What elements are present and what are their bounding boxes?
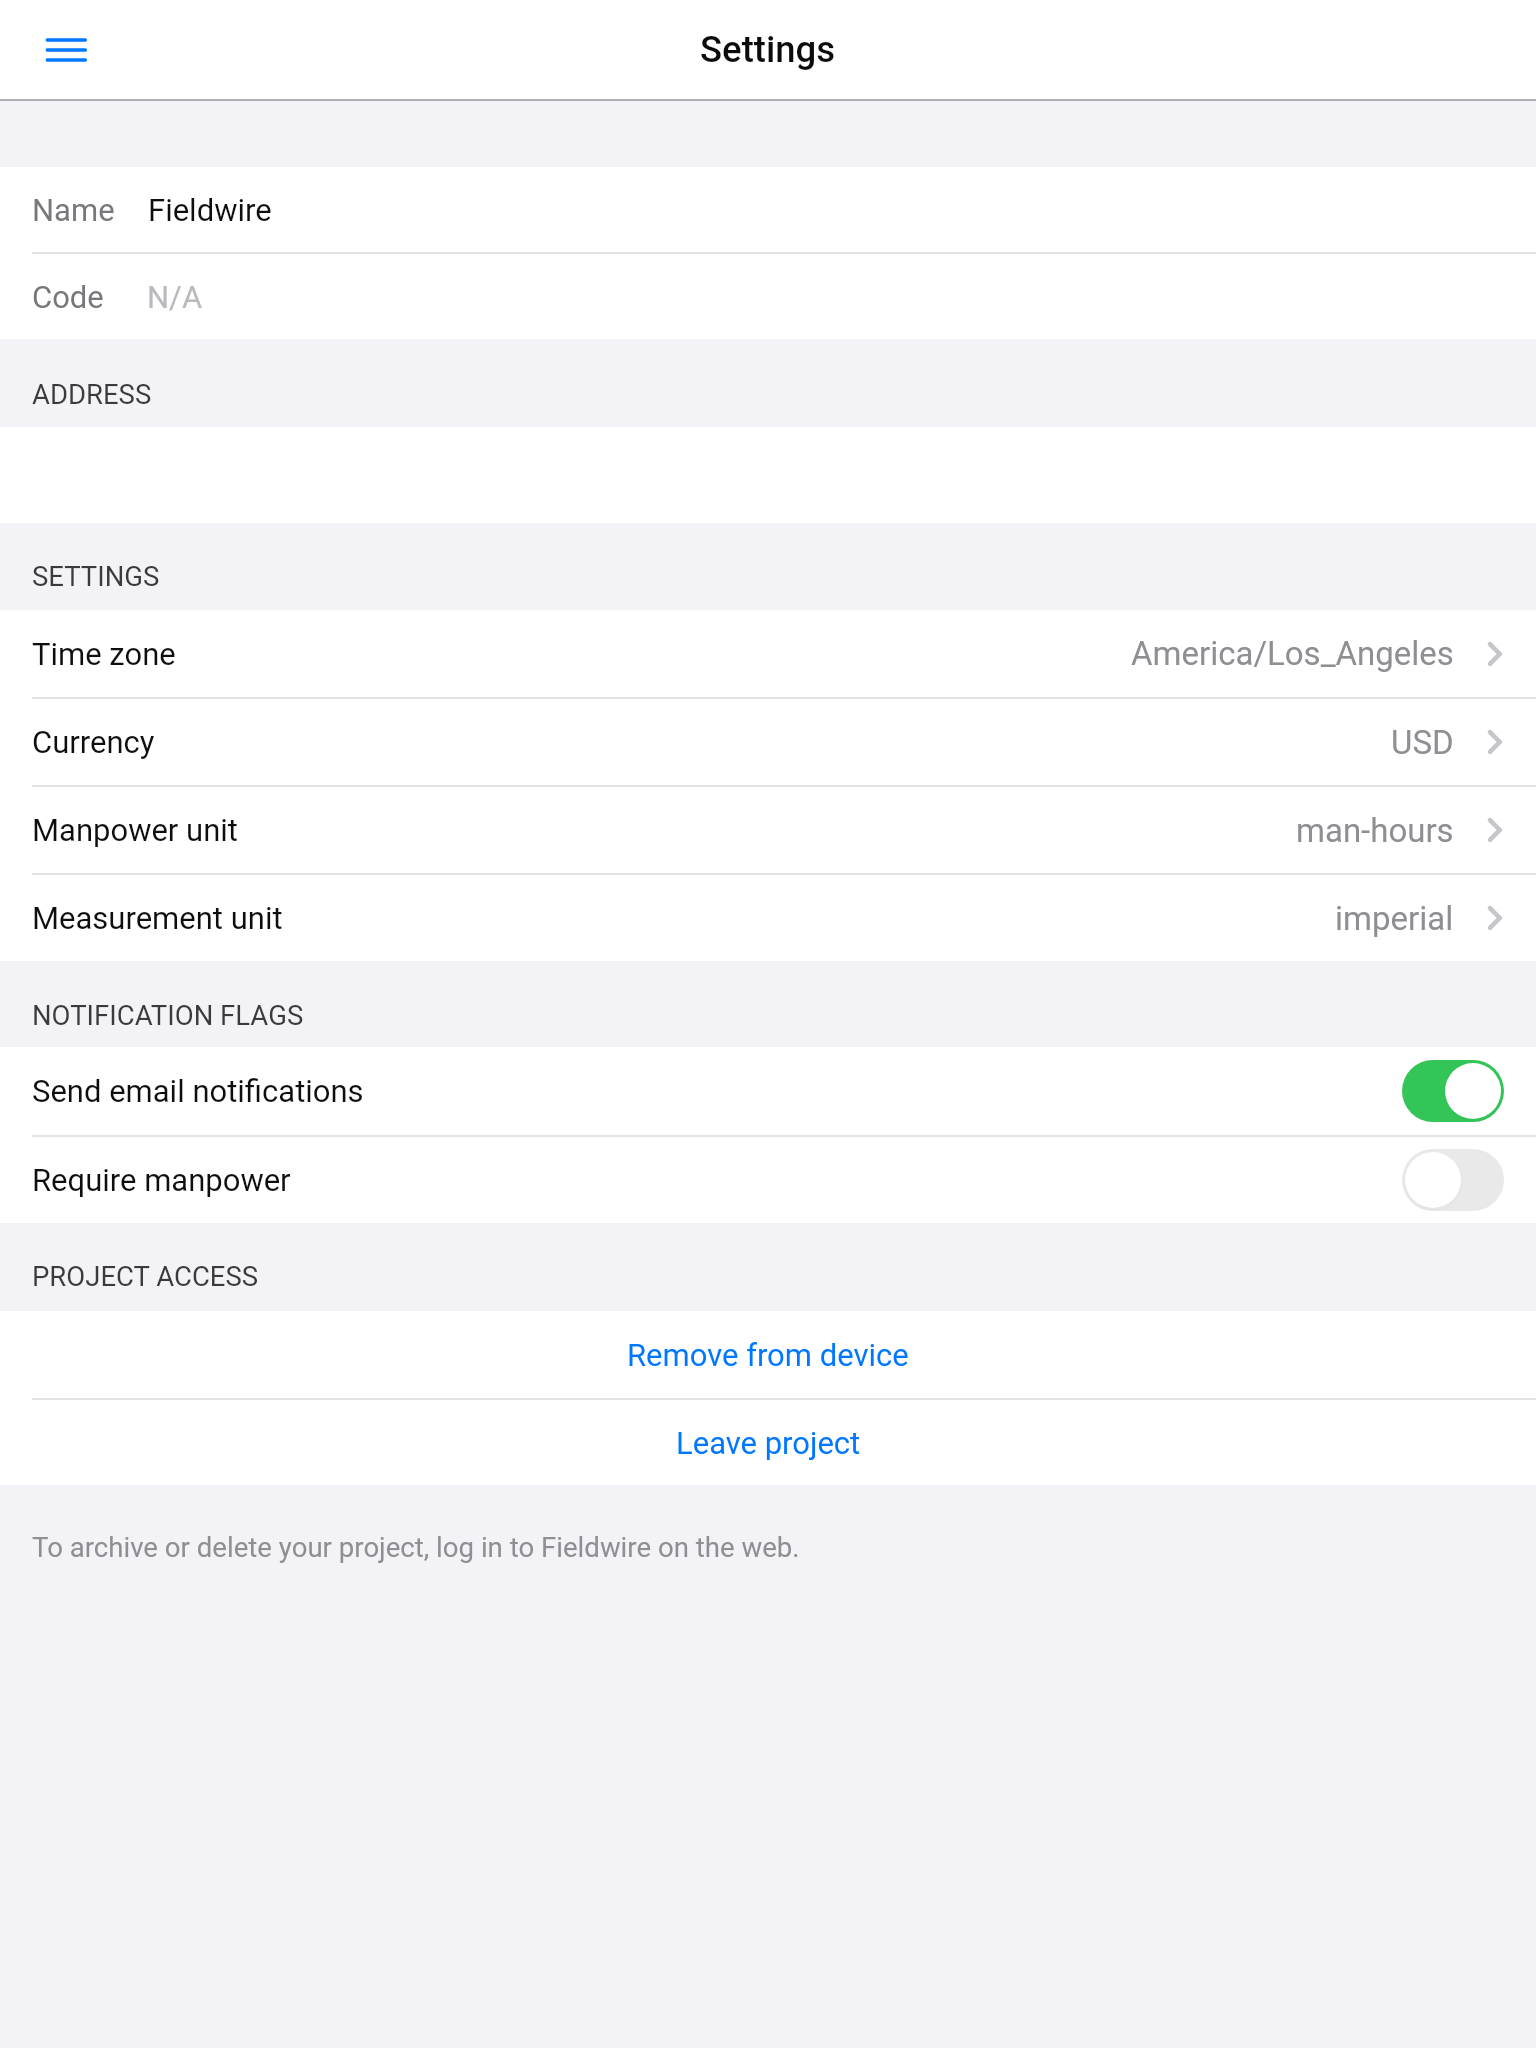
button[interactable]: Time zone	[0, 610, 1536, 697]
button[interactable]: Code	[0, 254, 1536, 339]
staticText: man-hours	[1296, 811, 1454, 850]
staticText: Fieldwire	[148, 192, 272, 228]
staticText: Require manpower	[32, 1162, 291, 1198]
button[interactable]: Leave project	[0, 1400, 1536, 1485]
button[interactable]: Open navigation menu	[22, 11, 100, 89]
button[interactable]: Send email notifications	[1402, 1060, 1504, 1122]
staticText: Currency	[32, 724, 155, 760]
staticText: Send email notifications	[32, 1073, 364, 1109]
button[interactable]: Measurement unit	[0, 875, 1536, 961]
staticText: N/A	[147, 279, 203, 315]
staticText: PROJECT ACCESS	[32, 1260, 259, 1292]
staticText: imperial	[1335, 899, 1454, 938]
button[interactable]: Name	[0, 167, 1536, 252]
staticText: Measurement unit	[32, 900, 283, 936]
staticText: Code	[32, 279, 104, 315]
staticText: NOTIFICATION FLAGS	[32, 999, 304, 1031]
staticText: Leave project	[676, 1425, 861, 1461]
staticText: To archive or delete your project, log i…	[32, 1531, 800, 1563]
staticText: Settings	[700, 28, 836, 71]
button[interactable]: Manpower unit	[0, 787, 1536, 873]
staticText: Name	[32, 192, 115, 228]
staticText: USD	[1391, 723, 1454, 762]
button[interactable]: Require manpower	[1402, 1149, 1504, 1211]
staticText: America/Los_Angeles	[1131, 634, 1454, 673]
staticText: ADDRESS	[32, 378, 152, 410]
staticText: Time zone	[32, 636, 176, 672]
staticText: SETTINGS	[32, 560, 160, 592]
button[interactable]: Remove from device	[0, 1311, 1536, 1398]
button[interactable]: Require manpower	[0, 1137, 1536, 1223]
staticText: Remove from device	[627, 1337, 909, 1373]
button[interactable]: Send email notifications	[0, 1047, 1536, 1135]
staticText: Manpower unit	[32, 812, 238, 848]
button[interactable]: Currency	[0, 699, 1536, 785]
